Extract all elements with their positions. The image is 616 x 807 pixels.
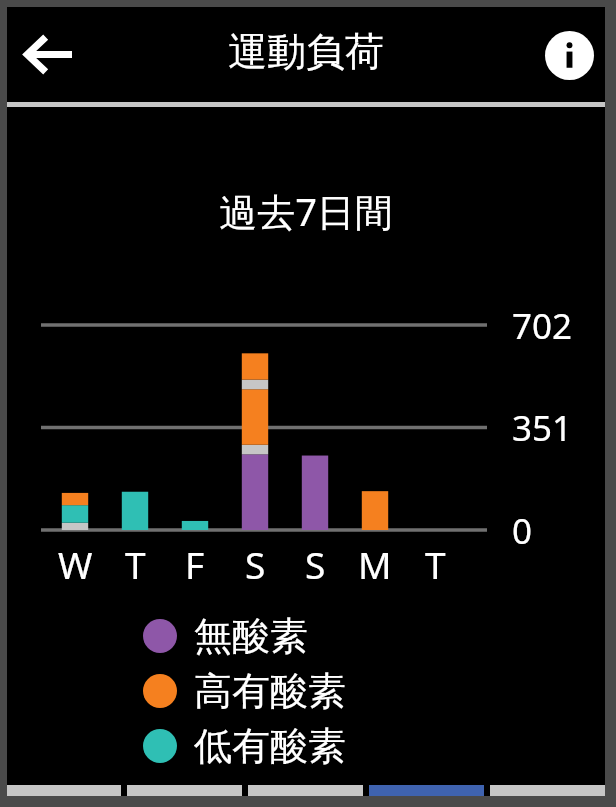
staticText: 0 xyxy=(512,507,533,555)
staticText: 702 xyxy=(512,302,573,350)
staticText: 高有酸素 xyxy=(194,667,346,715)
staticText: 351 xyxy=(512,404,573,452)
button[interactable]: Information xyxy=(541,29,597,81)
staticText: F xyxy=(185,539,205,589)
staticText: 低有酸素 xyxy=(194,722,346,770)
button[interactable]: 無酸素 xyxy=(143,612,308,660)
staticText: 過去7日間 xyxy=(7,185,605,237)
staticText: T xyxy=(425,539,446,589)
staticText: S xyxy=(245,539,266,589)
staticText: T xyxy=(125,539,146,589)
button[interactable]: 高有酸素 xyxy=(143,667,346,715)
staticText: M xyxy=(358,539,392,589)
staticText: W xyxy=(58,539,93,589)
staticText: 運動負荷 xyxy=(228,27,384,76)
staticText: 無酸素 xyxy=(194,612,308,660)
button[interactable]: Back xyxy=(17,29,79,79)
button[interactable]: 低有酸素 xyxy=(143,722,346,770)
staticText: S xyxy=(305,539,326,589)
